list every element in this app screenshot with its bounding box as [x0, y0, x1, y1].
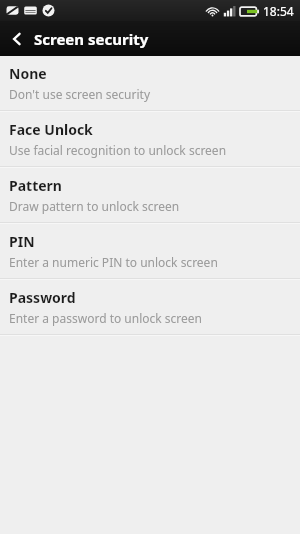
staticText: Pattern: [9, 176, 62, 195]
button[interactable]: Pattern: [0, 168, 300, 222]
staticText: Use facial recognition to unlock screen: [9, 142, 227, 158]
staticText: Enter a password to unlock screen: [9, 310, 202, 326]
button[interactable]: None: [0, 56, 300, 110]
button[interactable]: Face Unlock: [0, 112, 300, 166]
staticText: None: [9, 64, 47, 83]
staticText: Screen security: [34, 29, 149, 49]
staticText: PIN: [9, 232, 35, 251]
staticText: Password: [9, 288, 76, 307]
button[interactable]: Password: [0, 280, 300, 334]
button[interactable]: PIN: [0, 224, 300, 278]
staticText: 18:54: [263, 3, 294, 19]
staticText: Face Unlock: [9, 120, 93, 139]
staticText: Draw pattern to unlock screen: [9, 198, 180, 214]
staticText: Enter a numeric PIN to unlock screen: [9, 254, 218, 270]
staticText: Don't use screen security: [9, 86, 151, 102]
button[interactable]: Back: [0, 21, 34, 56]
